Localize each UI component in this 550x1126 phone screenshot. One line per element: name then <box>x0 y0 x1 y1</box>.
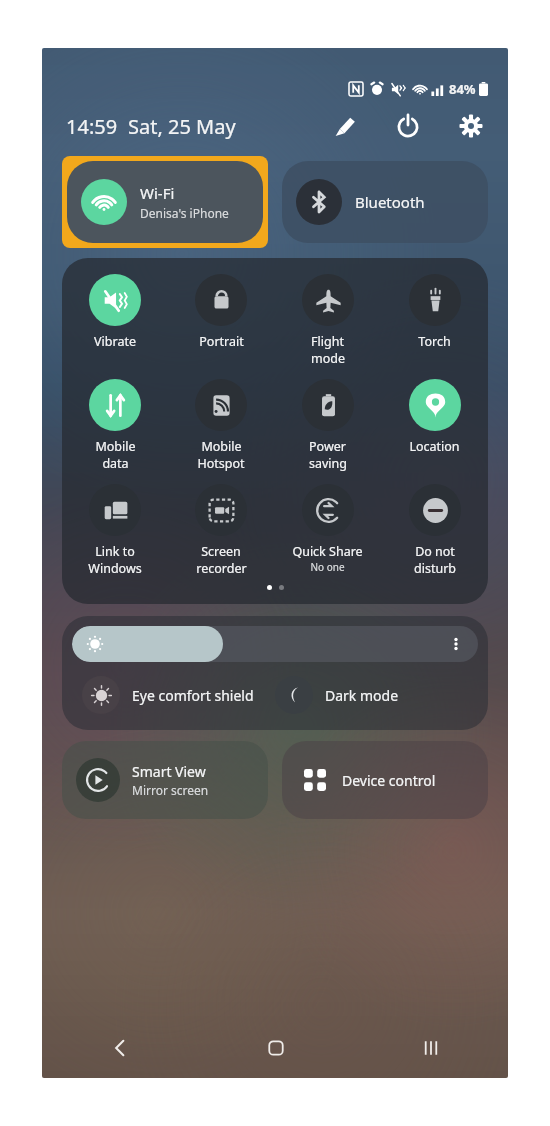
button[interactable]: Smart View <box>62 741 268 819</box>
staticText: Portrait <box>199 333 244 350</box>
staticText: Screen <box>201 543 241 560</box>
button[interactable]: Quick Share <box>274 482 381 576</box>
button[interactable]: Vibrate <box>62 272 168 352</box>
staticText: Bluetooth <box>355 192 425 212</box>
staticText: Link to <box>95 543 135 560</box>
button[interactable]: Link to <box>62 482 168 579</box>
staticText: Quick Share <box>292 543 363 560</box>
button[interactable]: Torch <box>381 272 488 352</box>
staticText: 14:59 <box>66 113 118 140</box>
button[interactable]: Eye comfort shield <box>72 676 275 714</box>
staticText: Wi-Fi <box>140 183 175 203</box>
button[interactable]: Do not <box>381 482 488 579</box>
staticText: Dark mode <box>325 686 399 705</box>
staticText: data <box>102 455 129 472</box>
staticText: Do not <box>415 543 455 560</box>
staticText: No one <box>310 560 345 574</box>
button[interactable]: Dark mode <box>275 676 478 714</box>
button[interactable]: Mobile <box>62 377 168 474</box>
staticText: mode <box>311 350 345 367</box>
button[interactable]: Power <box>274 377 381 474</box>
button[interactable]: Location <box>381 377 488 457</box>
staticText: Location <box>409 438 460 455</box>
staticText: Hotspot <box>197 455 245 472</box>
button[interactable]: Bluetooth <box>282 161 488 243</box>
staticText: Smart View <box>132 762 206 781</box>
staticText: Device control <box>342 771 436 790</box>
button[interactable]: Screen <box>168 482 274 579</box>
button[interactable]: Device control <box>282 741 488 819</box>
staticText: Sat, 25 May <box>128 113 236 140</box>
button[interactable]: More brightness options <box>448 636 464 652</box>
staticText: saving <box>309 455 347 472</box>
staticText: Mirror screen <box>132 782 209 798</box>
staticText: Mobile <box>95 438 136 455</box>
staticText: disturb <box>414 560 456 577</box>
staticText: Windows <box>88 560 142 577</box>
staticText: Torch <box>418 333 451 350</box>
button[interactable]: More brightness options <box>72 626 478 662</box>
button[interactable]: Wi-Fi <box>67 161 263 243</box>
staticText: Flight <box>311 333 344 350</box>
staticText: Power <box>309 438 346 455</box>
button[interactable]: Mobile <box>168 377 274 474</box>
staticText: 84% <box>449 80 476 98</box>
button[interactable]: Back <box>42 1018 198 1078</box>
staticText: Denisa's iPhone <box>140 205 229 221</box>
staticText: recorder <box>196 560 247 577</box>
staticText: Mobile <box>201 438 242 455</box>
button[interactable]: Flight <box>274 272 381 369</box>
button[interactable]: Edit <box>328 109 362 143</box>
button[interactable]: Portrait <box>168 272 274 352</box>
button[interactable]: Home <box>198 1018 353 1078</box>
staticText: Eye comfort shield <box>132 686 254 705</box>
button[interactable]: Recents <box>353 1018 508 1078</box>
button[interactable]: Settings <box>454 109 488 143</box>
staticText: Vibrate <box>94 333 136 350</box>
button[interactable]: Power <box>391 109 425 143</box>
